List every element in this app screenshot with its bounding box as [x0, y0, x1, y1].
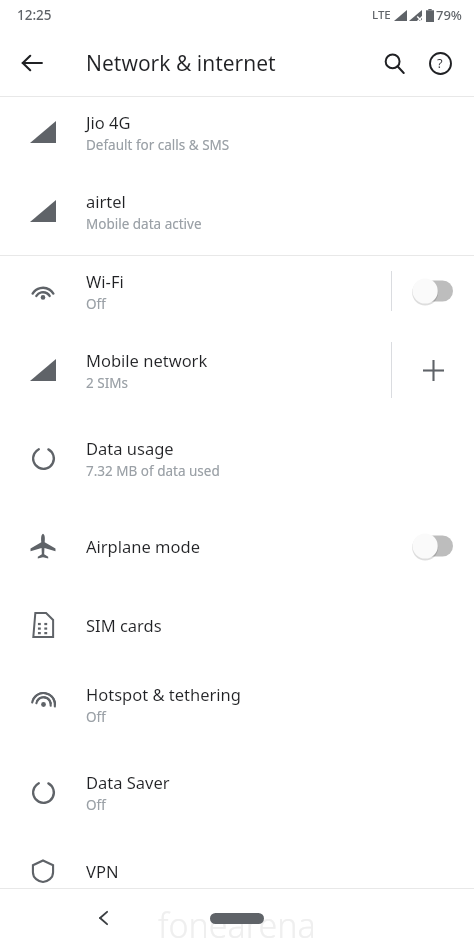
- staticText: VPN: [86, 860, 119, 882]
- button[interactable]: Airplane mode: [0, 502, 474, 590]
- staticText: Default for calls & SMS: [86, 136, 230, 154]
- button[interactable]: airtel: [0, 167, 474, 255]
- button[interactable]: Help: [417, 40, 463, 86]
- staticText: 79%: [436, 6, 462, 24]
- staticText: Mobile data active: [86, 215, 202, 233]
- button[interactable]: Hotspot & tethering: [0, 660, 474, 748]
- button[interactable]: Toggle: [392, 267, 474, 315]
- staticText: Off: [86, 796, 106, 814]
- staticText: Wi-Fi: [86, 270, 124, 292]
- button[interactable]: Back: [8, 39, 56, 87]
- staticText: 2 SIMs: [86, 374, 128, 392]
- staticText: airtel: [86, 190, 126, 212]
- button[interactable]: Jio 4G: [0, 97, 474, 167]
- staticText: 12:25: [17, 6, 52, 24]
- staticText: Off: [86, 708, 106, 726]
- staticText: Mobile network: [86, 349, 208, 371]
- staticText: SIM cards: [86, 614, 162, 636]
- staticText: fonearena: [158, 902, 316, 948]
- staticText: 7.32 MB of data used: [86, 462, 220, 480]
- button[interactable]: Search: [371, 40, 417, 86]
- button[interactable]: Data usage: [0, 414, 474, 502]
- button[interactable]: Wi-Fi: [0, 256, 474, 326]
- staticText: Network & internet: [86, 49, 276, 78]
- button[interactable]: Add network: [392, 342, 474, 398]
- button[interactable]: Toggle: [391, 522, 474, 570]
- button[interactable]: SIM cards: [0, 590, 474, 660]
- staticText: LTE: [372, 7, 391, 23]
- button[interactable]: Back: [82, 896, 126, 940]
- staticText: Hotspot & tethering: [86, 683, 241, 705]
- staticText: Off: [86, 295, 106, 313]
- staticText: Airplane mode: [86, 535, 200, 557]
- button[interactable]: Home: [187, 903, 287, 933]
- staticText: Data Saver: [86, 771, 170, 793]
- button[interactable]: VPN: [0, 836, 474, 906]
- staticText: ?: [437, 54, 443, 72]
- button[interactable]: Mobile network: [0, 326, 474, 414]
- staticText: Data usage: [86, 437, 174, 459]
- button[interactable]: Data Saver: [0, 748, 474, 836]
- staticText: Jio 4G: [86, 111, 131, 133]
